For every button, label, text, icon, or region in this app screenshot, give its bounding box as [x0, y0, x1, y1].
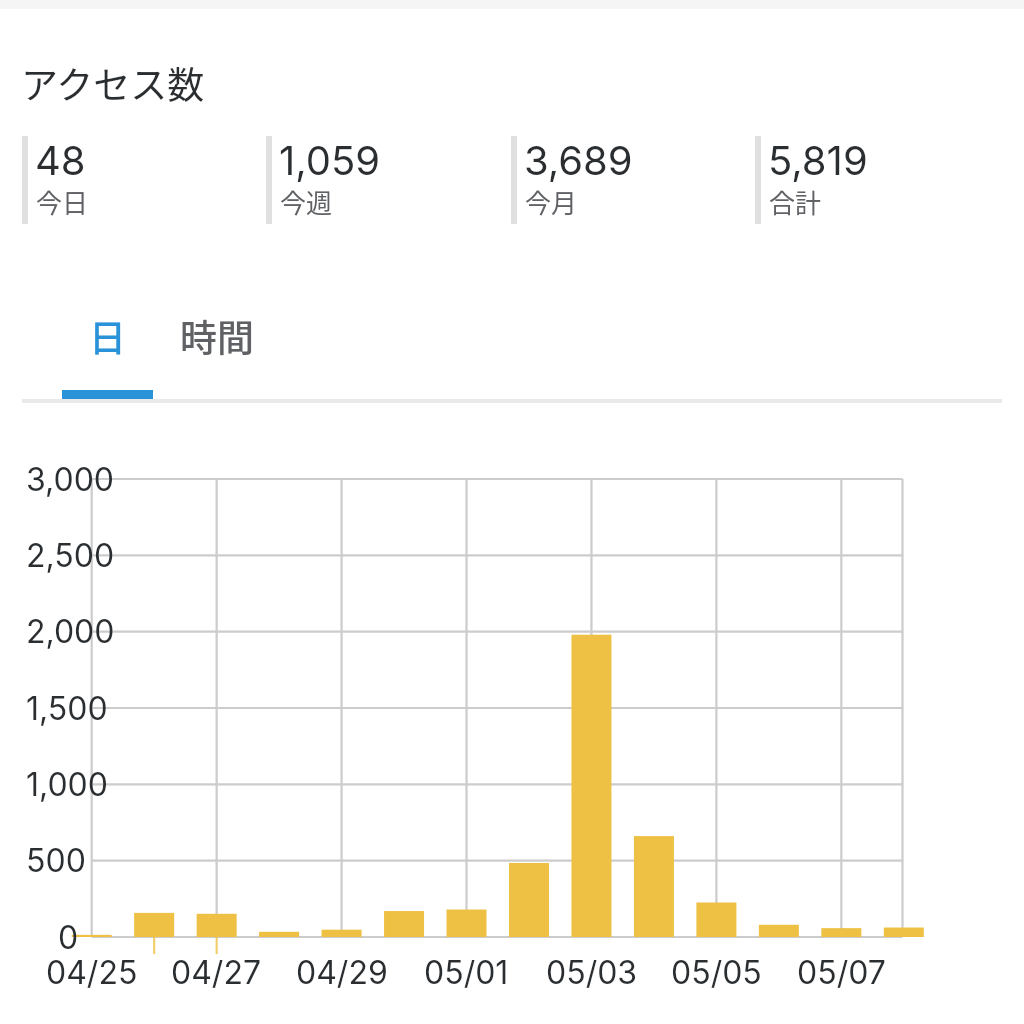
- staticText: 今月: [525, 183, 578, 221]
- staticText: 2,500: [26, 536, 115, 575]
- staticText: 3,689: [524, 136, 633, 184]
- staticText: 05/03: [546, 953, 638, 992]
- staticText: 時間: [180, 309, 254, 363]
- staticText: 1,059: [279, 136, 381, 184]
- staticText: 3,000: [26, 460, 115, 499]
- button[interactable]: 3,689: [511, 136, 749, 224]
- staticText: 今日: [36, 183, 89, 221]
- staticText: 05/05: [671, 953, 762, 992]
- button[interactable]: 時間: [171, 300, 262, 399]
- staticText: 48: [35, 136, 86, 184]
- button[interactable]: 48: [22, 136, 260, 224]
- staticText: 2,000: [26, 612, 115, 651]
- staticText: 1,500: [26, 689, 108, 728]
- staticText: 04/25: [46, 953, 138, 992]
- staticText: 500: [26, 841, 86, 880]
- staticText: 05/07: [797, 953, 886, 992]
- staticText: 05/01: [424, 953, 509, 992]
- staticText: 合計: [769, 183, 822, 221]
- staticText: 0: [58, 918, 79, 957]
- other: Daily access count chart: [0, 440, 1024, 960]
- staticText: 日: [89, 309, 126, 363]
- staticText: 04/29: [296, 953, 388, 992]
- staticText: 1,000: [26, 765, 108, 804]
- staticText: アクセス数: [21, 56, 205, 110]
- button[interactable]: 日: [62, 300, 153, 399]
- button[interactable]: 5,819: [755, 136, 993, 224]
- button[interactable]: 1,059: [266, 136, 504, 224]
- staticText: 5,819: [768, 136, 868, 184]
- staticText: 04/27: [171, 953, 262, 992]
- staticText: 今週: [280, 183, 333, 221]
